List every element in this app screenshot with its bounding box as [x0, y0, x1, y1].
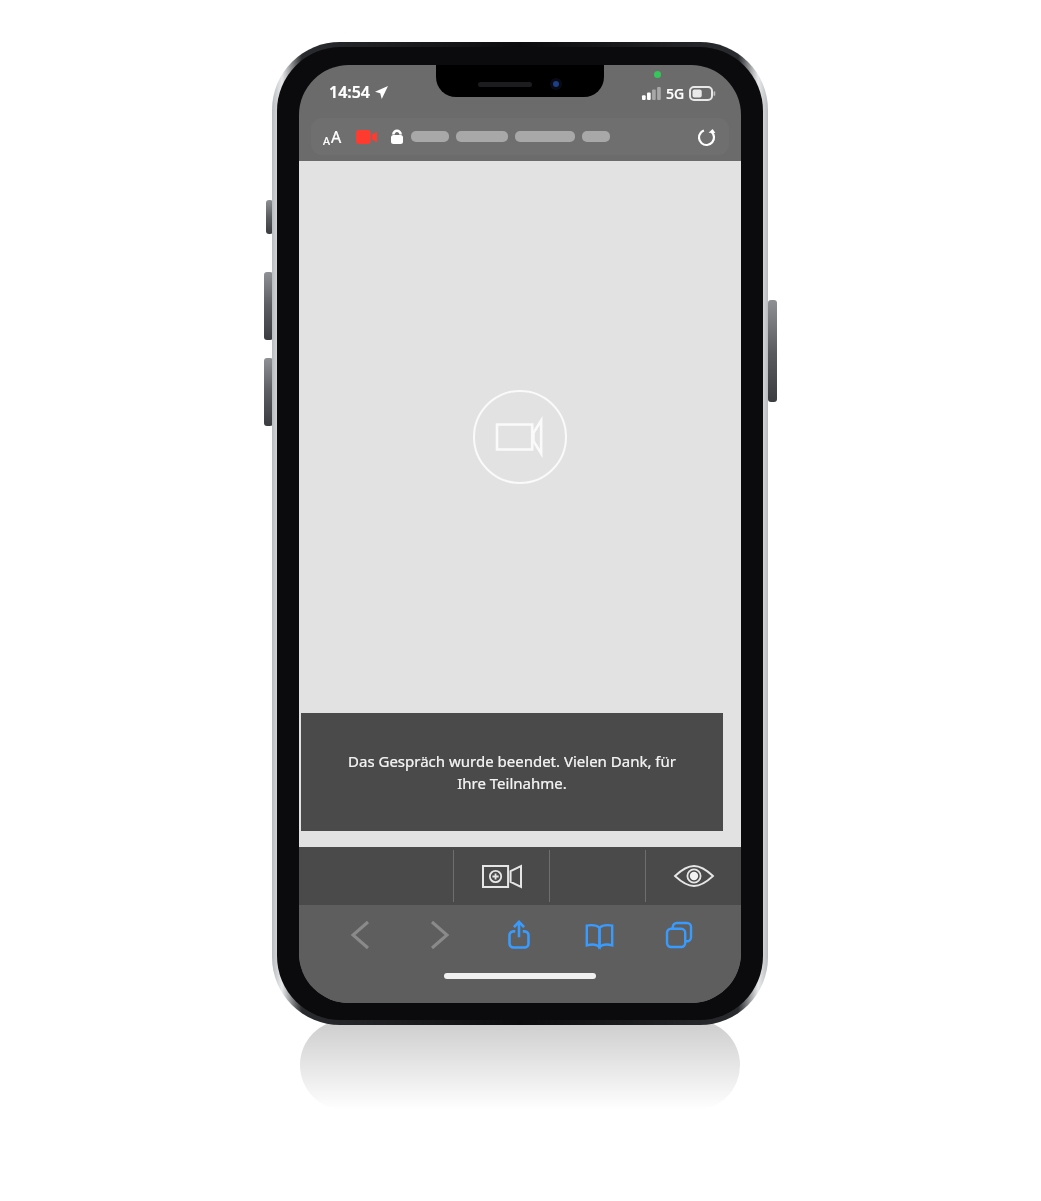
staticText: A — [331, 126, 342, 148]
button[interactable]: Back — [321, 905, 400, 965]
staticText: 14:54 — [329, 81, 371, 103]
button[interactable]: Share — [479, 905, 559, 965]
button[interactable]: Bookmarks — [559, 905, 639, 965]
button[interactable]: Forward — [400, 905, 479, 965]
staticText: Das Gespräch wurde beendet. Vielen Dank,… — [348, 751, 676, 794]
button[interactable]: Add video — [454, 847, 549, 905]
staticText: A — [323, 133, 331, 148]
button[interactable]: Reload — [695, 126, 717, 148]
button[interactable]: Tabs — [639, 905, 719, 965]
staticText: 5G — [666, 84, 685, 103]
button[interactable]: A — [311, 118, 729, 155]
button[interactable]: View — [646, 847, 741, 905]
